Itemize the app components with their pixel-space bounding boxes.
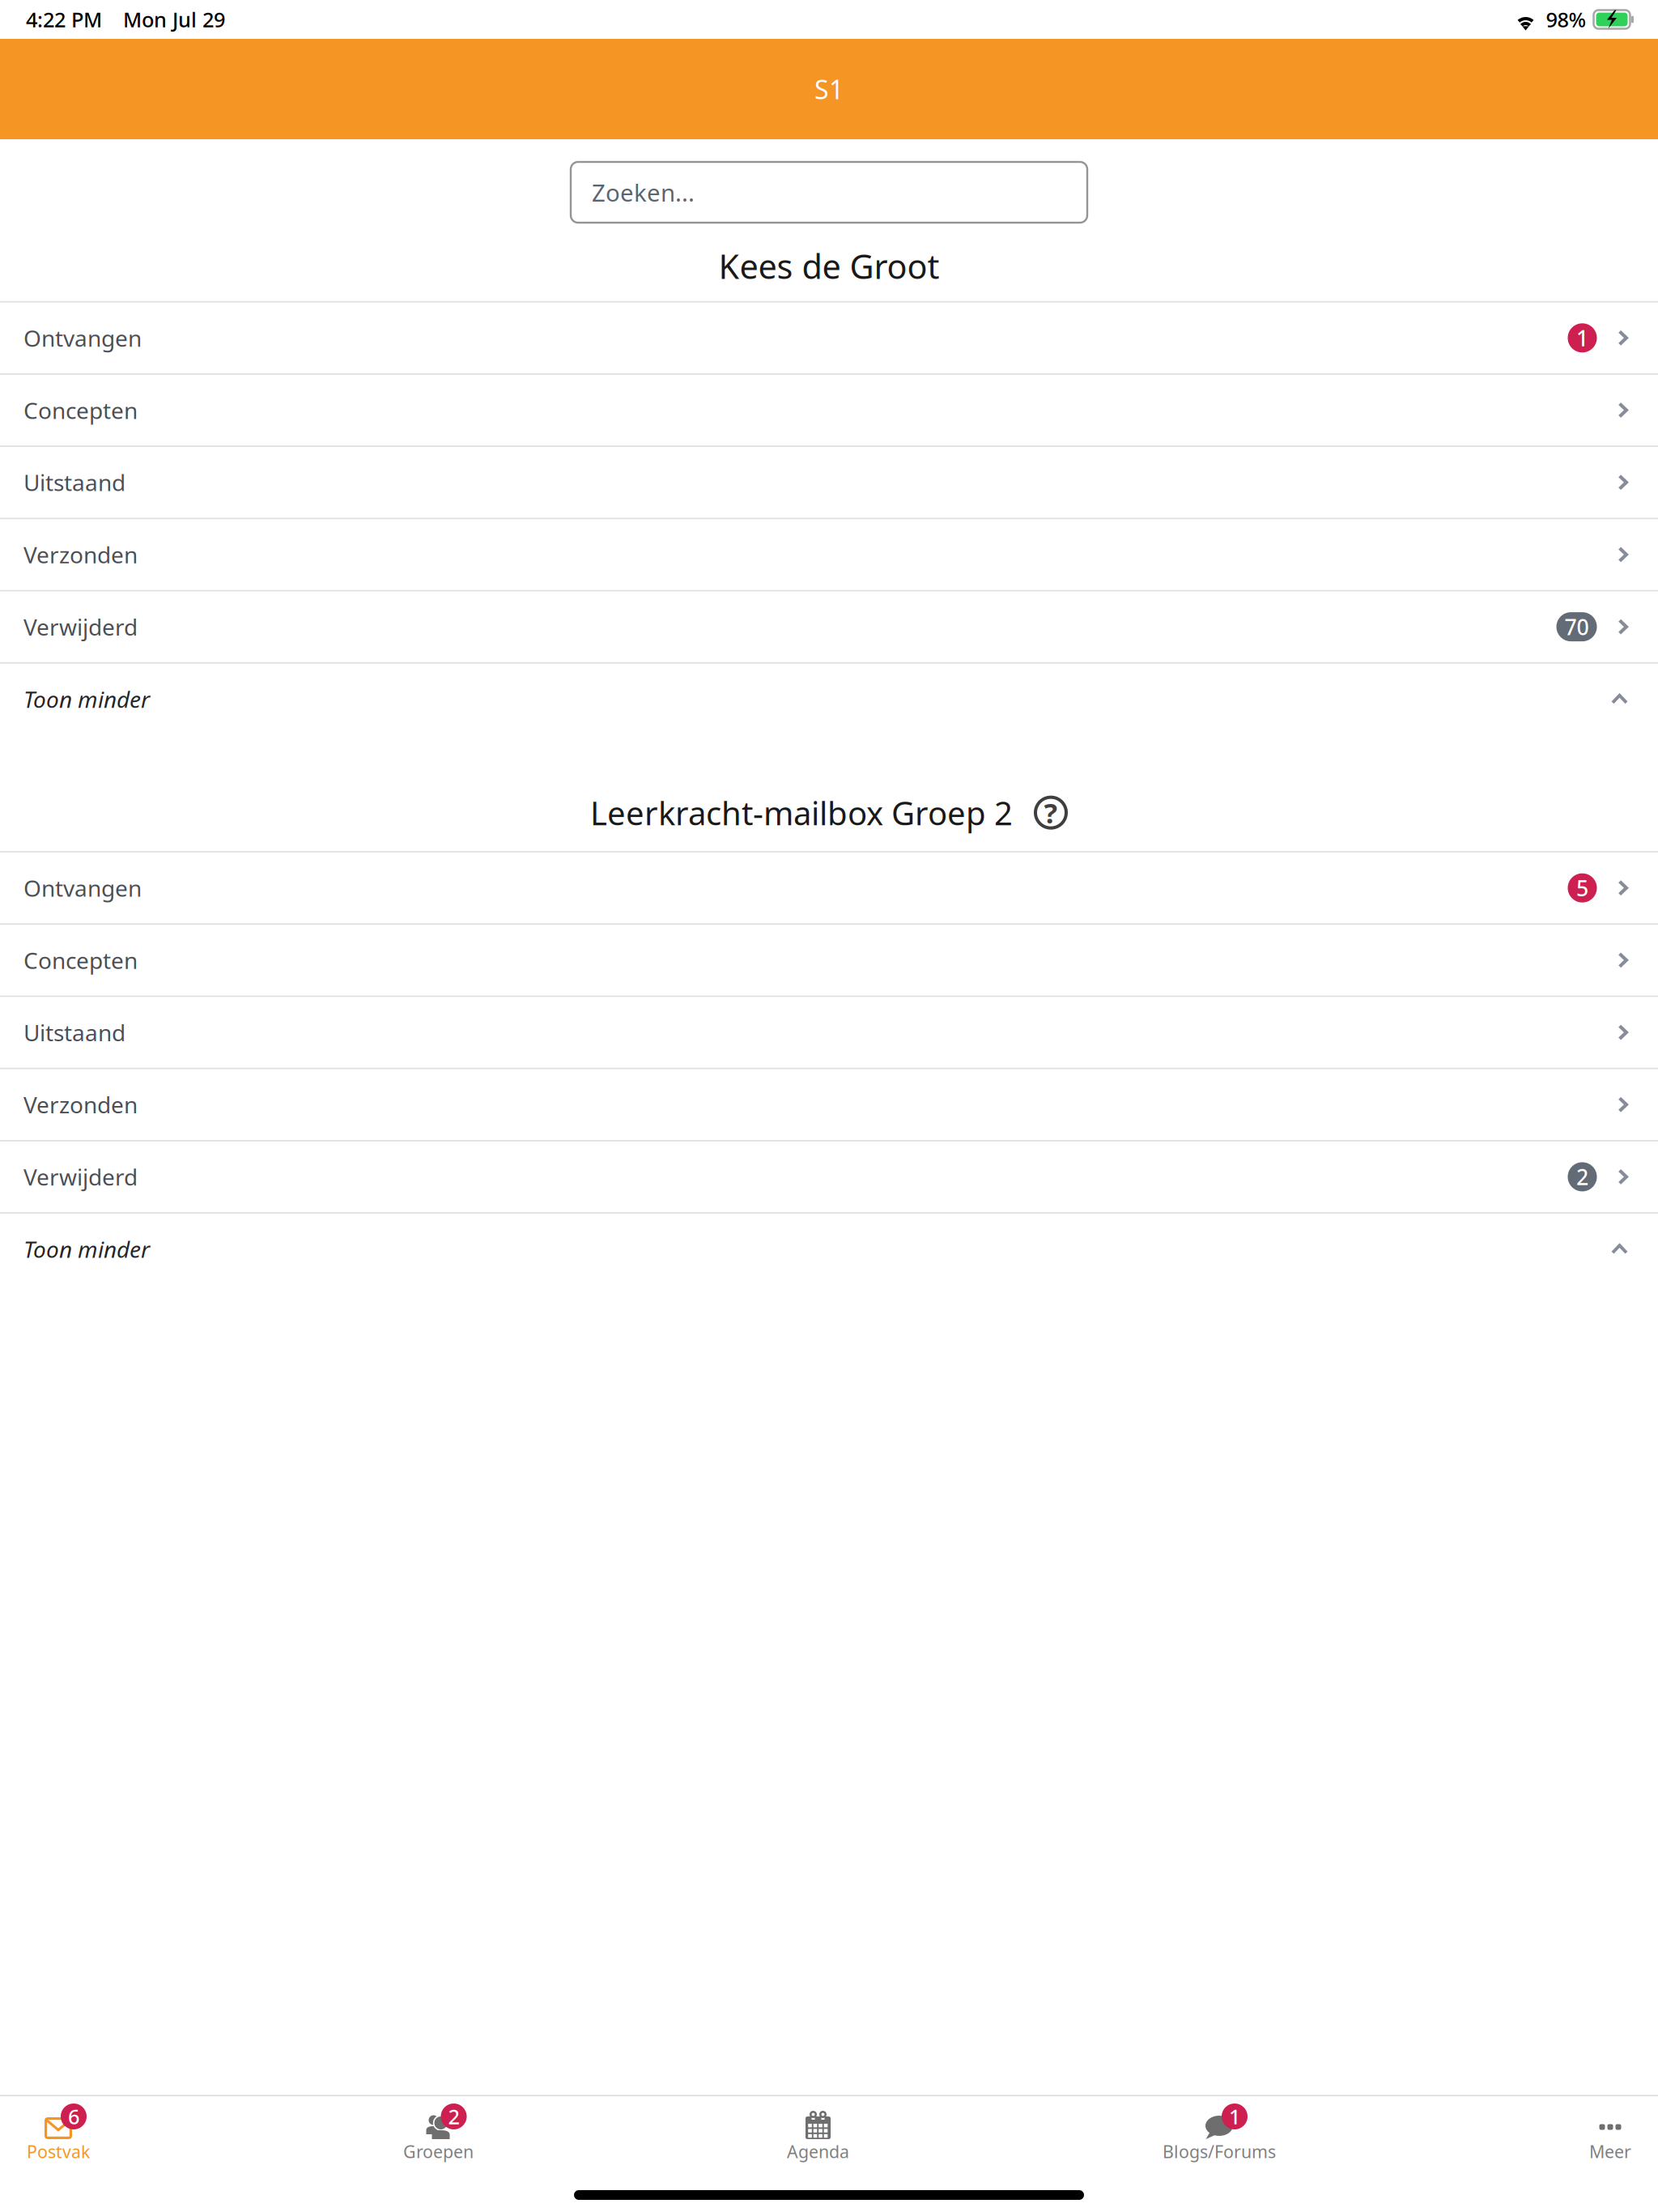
button[interactable]: Verwijderd bbox=[0, 1140, 1658, 1212]
staticText: Leerkracht-mailbox Groep 2 bbox=[590, 791, 1013, 834]
staticText: Meer bbox=[1589, 2140, 1631, 2163]
button[interactable]: Concepten bbox=[0, 923, 1658, 996]
staticText: Blogs/Forums bbox=[1163, 2140, 1276, 2163]
staticText: Verzonden bbox=[23, 1090, 138, 1120]
staticText: Groepen bbox=[403, 2140, 474, 2163]
staticText: Concepten bbox=[23, 395, 138, 425]
staticText: Ontvangen bbox=[23, 873, 142, 903]
button[interactable]: Verwijderd bbox=[0, 590, 1658, 662]
button[interactable]: Verzonden bbox=[0, 1068, 1658, 1140]
staticText: S1 bbox=[814, 72, 844, 106]
button[interactable]: Help bbox=[1034, 796, 1068, 830]
staticText: Ontvangen bbox=[23, 323, 142, 353]
staticText: 6 bbox=[68, 2103, 79, 2130]
staticText: Agenda bbox=[787, 2140, 849, 2163]
button[interactable]: Ontvangen bbox=[0, 301, 1658, 373]
button[interactable]: Ontvangen bbox=[0, 851, 1658, 923]
staticText: Uitstaand bbox=[23, 467, 125, 497]
staticText: 4:22 PM bbox=[26, 6, 102, 33]
staticText: 2 bbox=[1576, 1162, 1588, 1191]
button[interactable]: 1 bbox=[1163, 2112, 1276, 2163]
button[interactable]: Agenda bbox=[787, 2112, 849, 2163]
staticText: Postvak bbox=[27, 2140, 90, 2163]
button[interactable]: 6 bbox=[27, 2112, 90, 2163]
staticText: Concepten bbox=[23, 945, 138, 975]
staticText: 98% bbox=[1546, 6, 1586, 33]
staticText: Toon minder bbox=[23, 1234, 150, 1264]
staticText: Mon Jul 29 bbox=[123, 6, 225, 33]
staticText: 5 bbox=[1576, 874, 1588, 902]
staticText: Kees de Groot bbox=[718, 244, 940, 288]
button[interactable]: 2 bbox=[403, 2112, 474, 2163]
button[interactable]: Toon minder bbox=[0, 662, 1658, 734]
staticText: Toon minder bbox=[23, 684, 150, 714]
staticText: Zoeken... bbox=[592, 177, 695, 208]
staticText: 2 bbox=[448, 2103, 459, 2130]
button[interactable]: Meer bbox=[1589, 2112, 1631, 2163]
button[interactable]: Concepten bbox=[0, 373, 1658, 446]
button[interactable]: Verzonden bbox=[0, 518, 1658, 590]
staticText: 70 bbox=[1564, 612, 1589, 641]
staticText: Uitstaand bbox=[23, 1017, 125, 1047]
staticText: Verwijderd bbox=[23, 1162, 138, 1192]
button[interactable]: Uitstaand bbox=[0, 446, 1658, 518]
staticText: Verzonden bbox=[23, 539, 138, 570]
staticText: ? bbox=[1044, 794, 1058, 831]
staticText: 1 bbox=[1229, 2103, 1240, 2130]
staticText: 1 bbox=[1576, 324, 1588, 352]
button[interactable]: Zoeken... bbox=[571, 162, 1087, 223]
button[interactable]: Uitstaand bbox=[0, 996, 1658, 1068]
staticText: Verwijderd bbox=[23, 612, 138, 642]
button[interactable]: Toon minder bbox=[0, 1212, 1658, 1284]
